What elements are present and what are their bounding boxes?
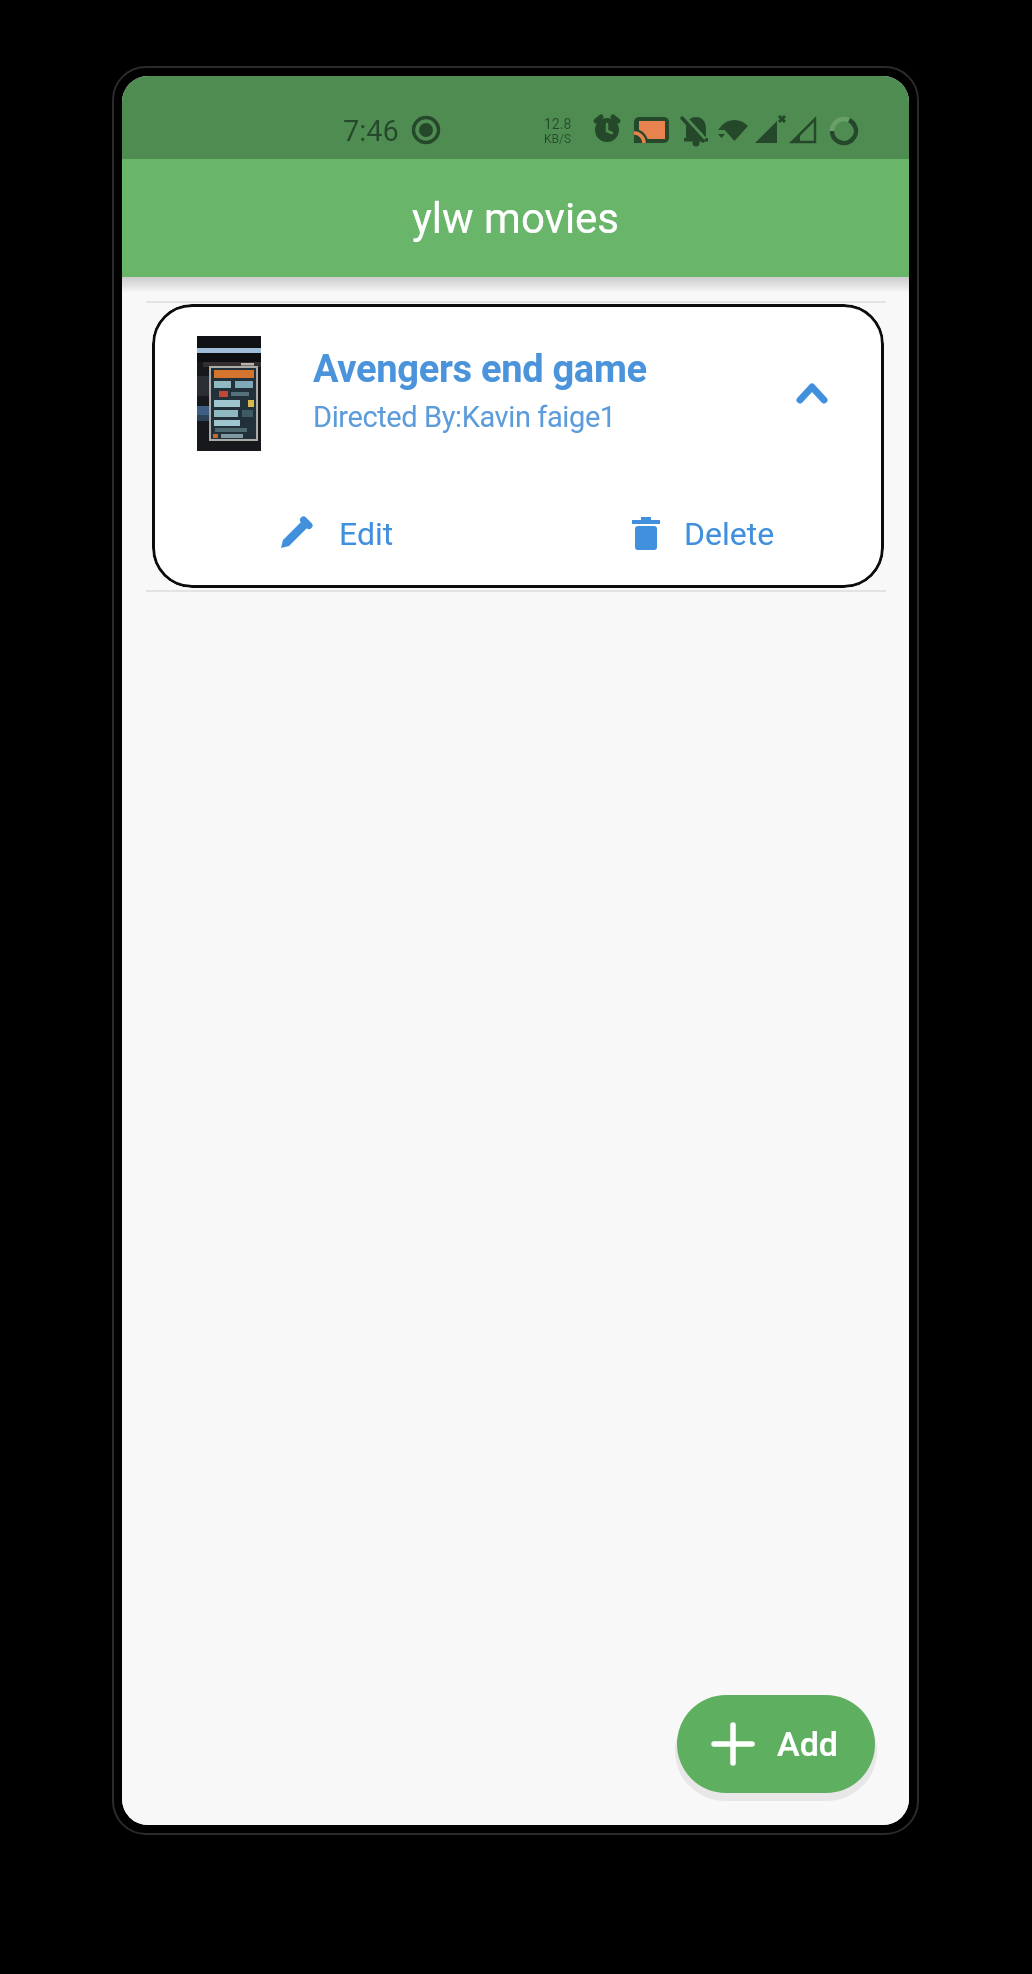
button[interactable]: Delete	[518, 499, 884, 569]
staticText: ylw movies	[412, 194, 620, 243]
staticText: Avengers end game	[313, 347, 647, 392]
button[interactable]	[796, 382, 828, 404]
staticText: 12.8	[544, 116, 572, 132]
staticText: Edit	[339, 515, 394, 553]
button[interactable]: Add	[677, 1695, 875, 1793]
staticText: Add	[777, 1724, 839, 1764]
staticText: 7:46	[343, 114, 399, 148]
staticText: Delete	[684, 515, 775, 553]
button[interactable]: Avengers end game	[152, 304, 884, 588]
staticText: Directed By:Kavin faige1	[313, 400, 616, 434]
staticText: KB/S	[544, 132, 572, 146]
button[interactable]: Edit	[152, 499, 518, 569]
